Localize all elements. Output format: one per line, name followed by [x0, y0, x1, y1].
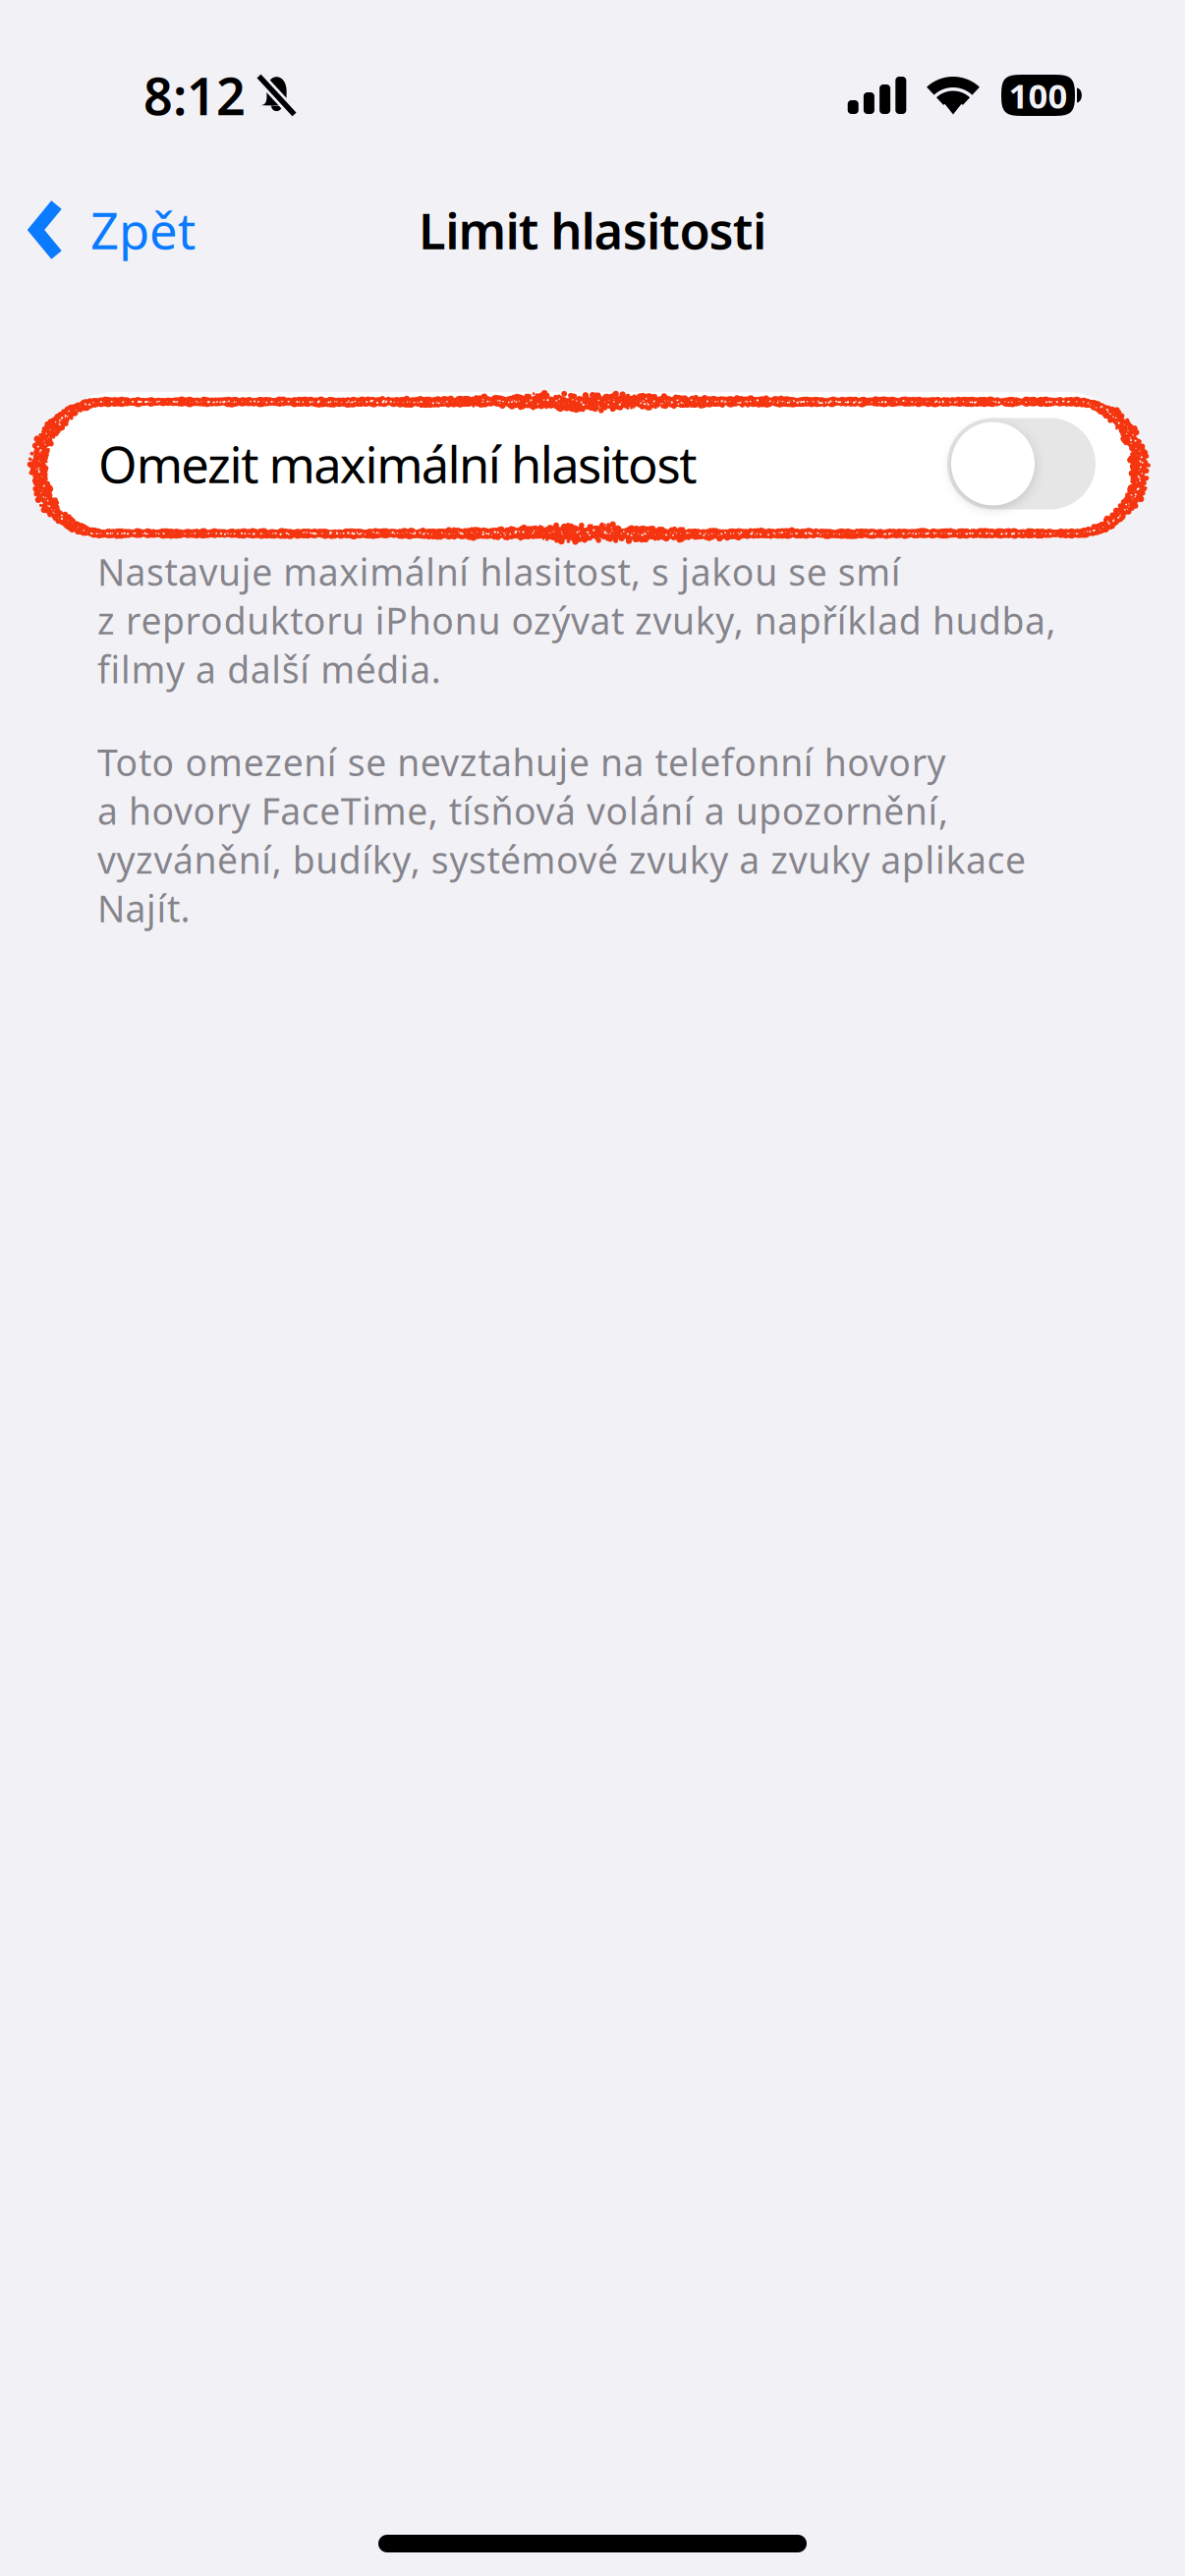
staticText: Zpět [90, 197, 196, 263]
staticText: Omezit maximální hlasitost [98, 431, 697, 497]
staticText: Toto omezení se nevztahuje na telefonní … [97, 738, 1026, 932]
button[interactable]: Omezit maximální hlasitost [51, 399, 1130, 529]
staticText: 8:12 [143, 61, 246, 129]
staticText: 100 [1009, 73, 1068, 118]
staticText: Limit hlasitosti [419, 197, 766, 263]
staticText: Nastavuje maximální hlasitost, s jakou s… [97, 547, 1056, 693]
button[interactable]: Zpět [0, 176, 225, 284]
